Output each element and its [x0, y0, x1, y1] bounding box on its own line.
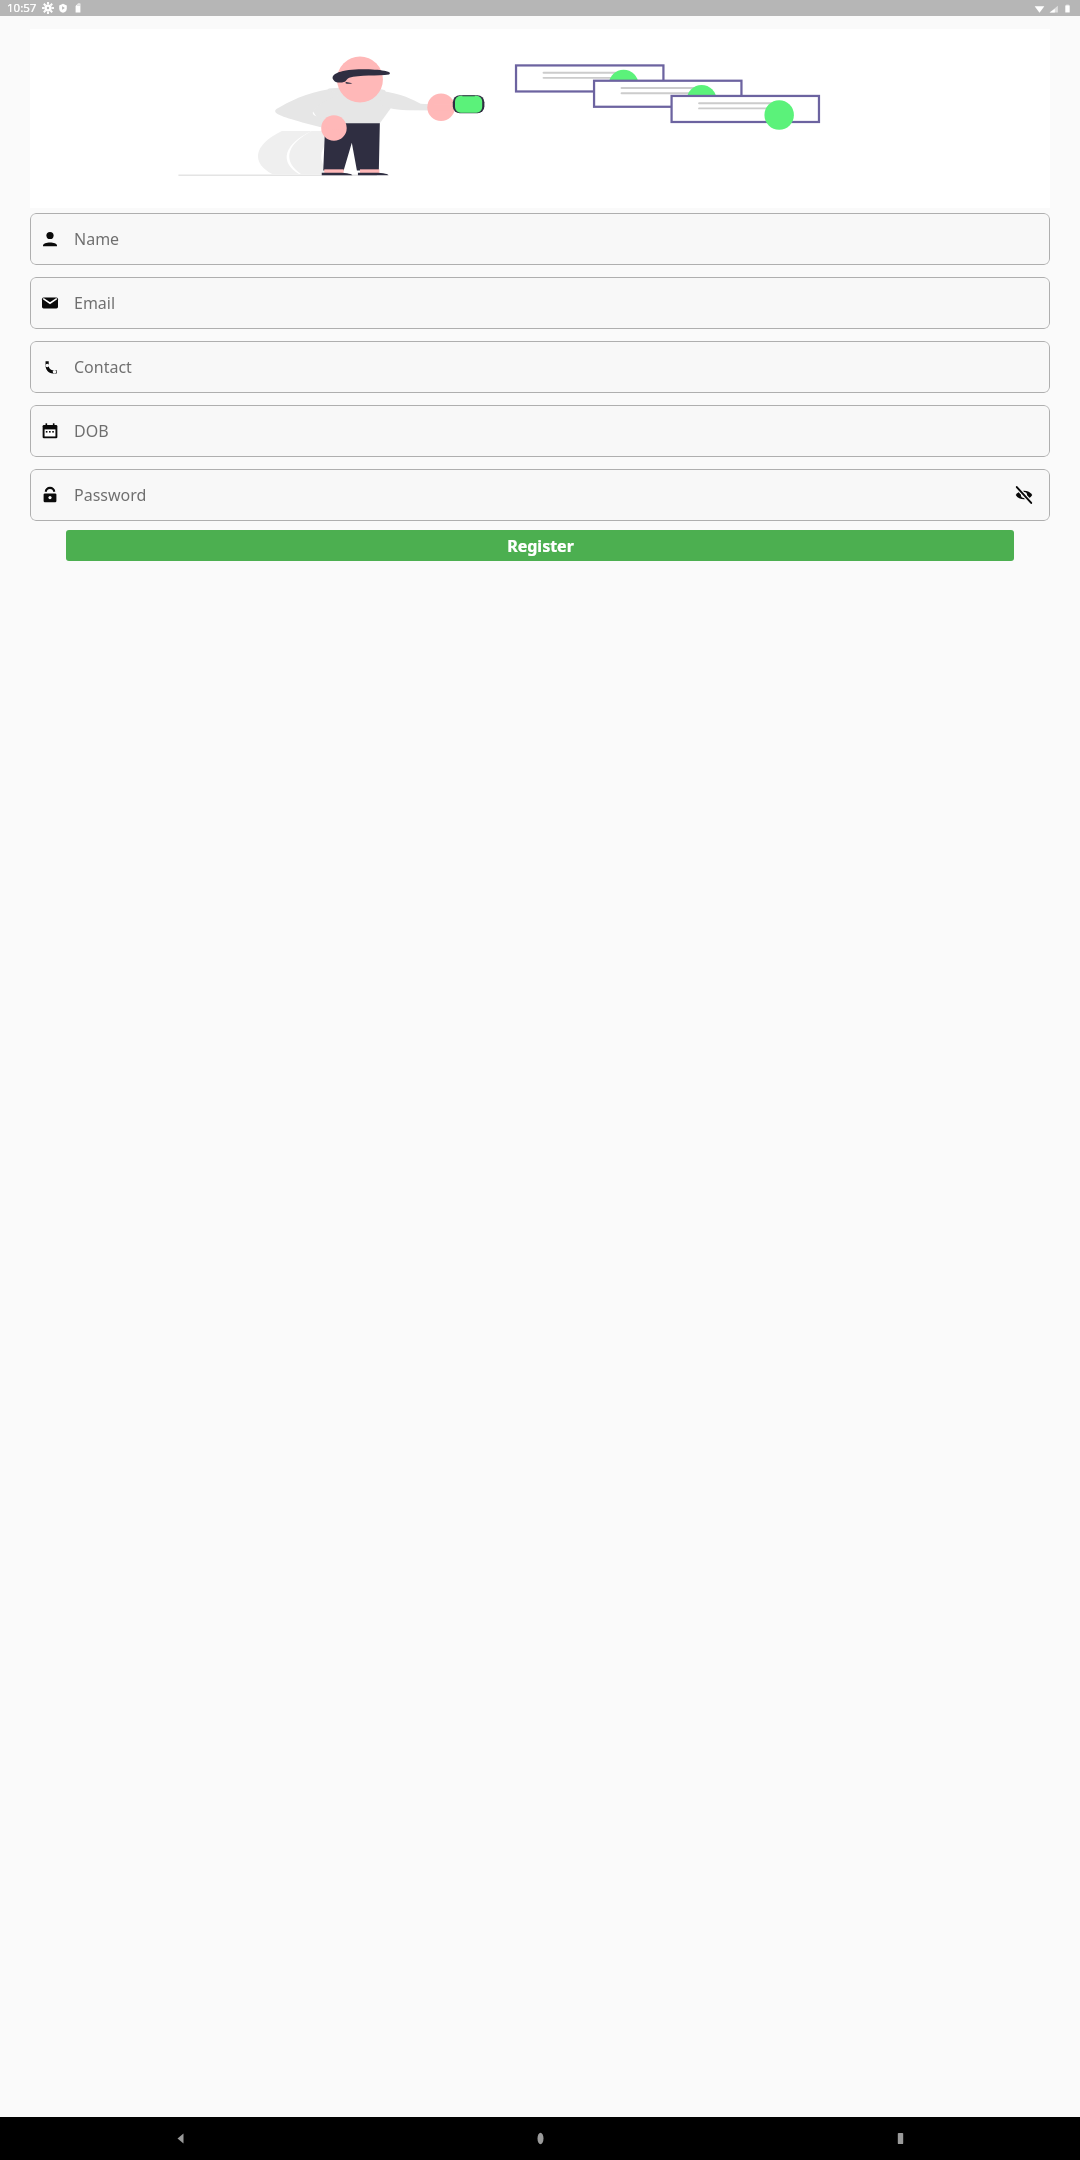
button[interactable]: Toggle password visibility: [1012, 483, 1036, 507]
staticText: Name: [74, 228, 120, 250]
staticText: Register: [507, 535, 574, 557]
button[interactable]: Register: [66, 530, 1014, 561]
staticText: 10:57: [7, 0, 37, 16]
button[interactable]: Recent apps: [720, 2117, 1080, 2160]
button[interactable]: Back: [0, 2117, 360, 2160]
button[interactable]: Contact: [30, 341, 1050, 393]
staticText: Contact: [74, 356, 132, 378]
button[interactable]: Home: [360, 2117, 720, 2160]
staticText: Password: [74, 484, 147, 506]
button[interactable]: Password: [30, 469, 1050, 521]
staticText: Email: [74, 292, 116, 314]
staticText: DOB: [74, 420, 109, 442]
button[interactable]: Email: [30, 277, 1050, 329]
button[interactable]: DOB: [30, 405, 1050, 457]
button[interactable]: Name: [30, 213, 1050, 265]
